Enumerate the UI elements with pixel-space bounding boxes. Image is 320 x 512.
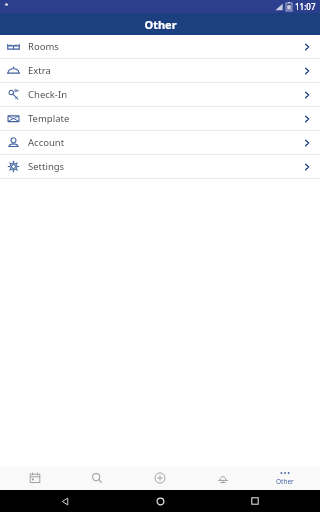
staticText: Account — [28, 136, 65, 149]
button[interactable]: Account — [0, 131, 320, 155]
button[interactable]: Reports — [195, 466, 251, 490]
staticText: 11:07 — [295, 1, 316, 12]
button[interactable]: Settings — [0, 155, 320, 179]
staticText: Settings — [28, 160, 65, 173]
staticText: Other — [276, 477, 294, 486]
staticText: Template — [28, 112, 70, 125]
button[interactable]: Add — [132, 466, 188, 490]
button[interactable]: Calendar — [7, 466, 63, 490]
button[interactable]: Search — [69, 466, 125, 490]
staticText: Extra — [28, 64, 51, 77]
button[interactable]: Back — [35, 490, 95, 512]
button[interactable]: Home — [130, 490, 190, 512]
staticText: Other — [144, 17, 177, 32]
button[interactable]: Extra — [0, 59, 320, 83]
button[interactable]: Template — [0, 107, 320, 131]
staticText: Rooms — [28, 40, 59, 53]
button[interactable]: Other — [257, 466, 313, 490]
button[interactable]: Rooms — [0, 35, 320, 59]
staticText: Check-In — [28, 88, 68, 101]
button[interactable]: Check-In — [0, 83, 320, 107]
button[interactable]: Recents — [225, 490, 285, 512]
